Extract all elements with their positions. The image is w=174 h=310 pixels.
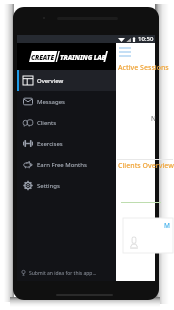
staticText: Messages — [37, 98, 65, 106]
button[interactable]: Clients — [17, 112, 116, 133]
button[interactable]: Submit an idea for this app... — [17, 265, 116, 281]
button[interactable]: Overview — [17, 70, 116, 91]
button[interactable]: Exercises — [17, 133, 116, 154]
staticText: M — [164, 221, 170, 230]
button[interactable]: Messages — [17, 91, 116, 112]
button[interactable]: Earn Free Months — [17, 154, 116, 175]
staticText: Active Sessions — [118, 63, 169, 73]
staticText: Clients — [37, 119, 57, 127]
button[interactable]: Open navigation menu — [119, 47, 131, 57]
staticText: CREATE — [31, 53, 55, 62]
staticText: 10:50 — [138, 35, 154, 43]
button[interactable]: Settings — [17, 175, 116, 196]
staticText: Clients Overview — [118, 161, 174, 171]
staticText: Settings — [37, 182, 60, 190]
button[interactable]: M — [123, 218, 173, 253]
staticText: Earn Free Months — [37, 161, 87, 169]
staticText: Submit an idea for this app... — [29, 270, 97, 277]
staticText: N — [151, 114, 156, 123]
staticText: Overview — [37, 77, 64, 85]
staticText: Exercises — [37, 140, 63, 148]
staticText: TRAINING LAB — [60, 53, 106, 62]
